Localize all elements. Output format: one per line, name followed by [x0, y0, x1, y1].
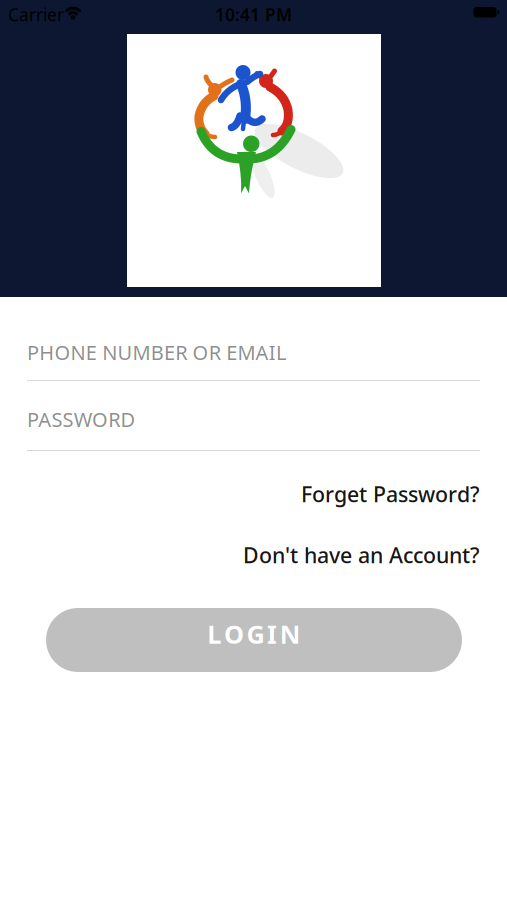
staticText: Don't have an Account?	[243, 541, 480, 569]
staticText: LOGIN	[207, 617, 301, 651]
button[interactable]: Don't have an Account?	[243, 541, 480, 569]
staticText: Forget Password?	[301, 480, 480, 508]
button[interactable]: LOGIN	[46, 608, 462, 672]
staticText: 10:41 PM	[215, 3, 292, 26]
button[interactable]: PASSWORD	[27, 408, 480, 451]
button[interactable]: Forget Password?	[301, 480, 480, 508]
staticText: Carrier	[8, 3, 64, 26]
button[interactable]: PHONE NUMBER OR EMAIL	[27, 341, 480, 381]
staticText: PASSWORD	[27, 406, 135, 433]
staticText: PHONE NUMBER OR EMAIL	[27, 339, 286, 366]
